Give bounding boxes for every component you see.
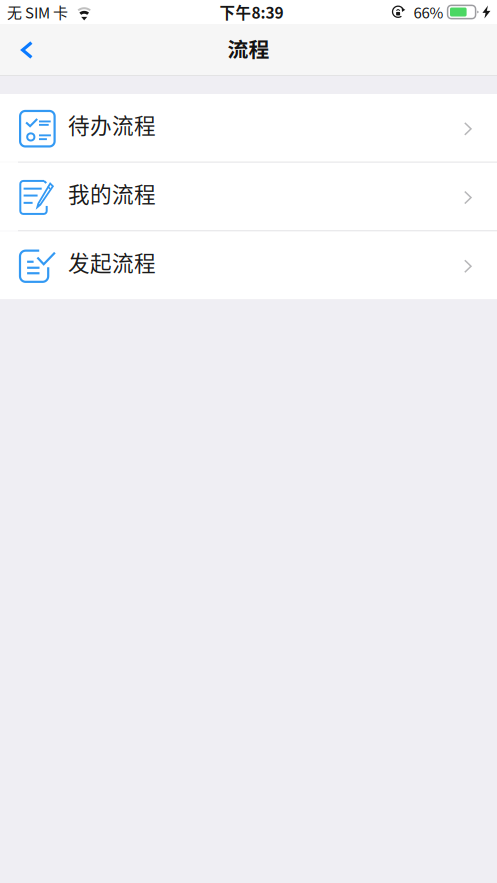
staticText: 66% xyxy=(414,1,444,23)
staticText: 发起流程 xyxy=(68,246,156,277)
staticText: 我的流程 xyxy=(68,177,156,209)
button[interactable]: 发起流程 xyxy=(0,231,497,299)
staticText: 待办流程 xyxy=(68,109,156,140)
button[interactable]: 待办流程 xyxy=(0,94,497,162)
staticText: 流程 xyxy=(227,33,269,63)
button[interactable]: 我的流程 xyxy=(0,163,497,230)
staticText: 下午8:39 xyxy=(219,1,283,23)
staticText: 无 SIM 卡 xyxy=(7,1,68,23)
button[interactable]: 返回 xyxy=(5,28,49,72)
